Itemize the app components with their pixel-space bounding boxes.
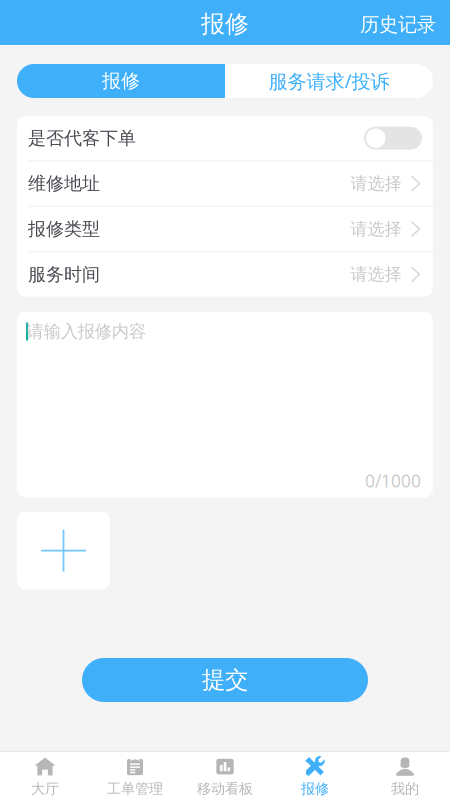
staticText: 工单管理 [107,780,163,798]
staticText: 历史记录 [360,12,436,37]
button[interactable]: 服务时间 [17,252,433,297]
staticText: 维修地址 [28,172,100,195]
button[interactable]: 历史记录 [343,0,450,45]
staticText: 请选择 [350,218,401,240]
button[interactable]: 工单管理 [90,752,180,800]
staticText: 大厅 [31,780,59,798]
button[interactable]: 是否代客下单 [17,116,433,160]
staticText: 请选择 [350,264,401,285]
button[interactable]: 添加图片 [17,512,110,590]
staticText: 报修 [201,9,249,39]
staticText: 服务时间 [28,263,100,286]
button[interactable]: 报修 [270,752,360,800]
staticText: 移动看板 [197,780,253,798]
button[interactable]: 报修 [17,64,225,98]
staticText: 报修 [102,69,140,93]
staticText: 报修类型 [28,218,100,240]
staticText: 请输入报修内容 [27,321,146,342]
staticText: 提交 [202,665,248,695]
staticText: 是否代客下单 [28,127,136,150]
button[interactable]: 报修类型 [17,207,433,251]
button[interactable]: 移动看板 [180,752,270,800]
staticText: 请选择 [350,173,401,194]
button[interactable]: 大厅 [0,752,90,800]
staticText: 报修 [301,780,329,798]
button[interactable]: 提交 [82,658,368,702]
staticText: 我的 [391,780,419,798]
button[interactable]: 我的 [360,752,450,800]
staticText: 服务请求/投诉 [268,68,389,94]
button[interactable]: 维修地址 [17,161,433,206]
button[interactable]: 服务请求/投诉 [225,64,433,98]
staticText: 0/1000 [365,469,421,493]
